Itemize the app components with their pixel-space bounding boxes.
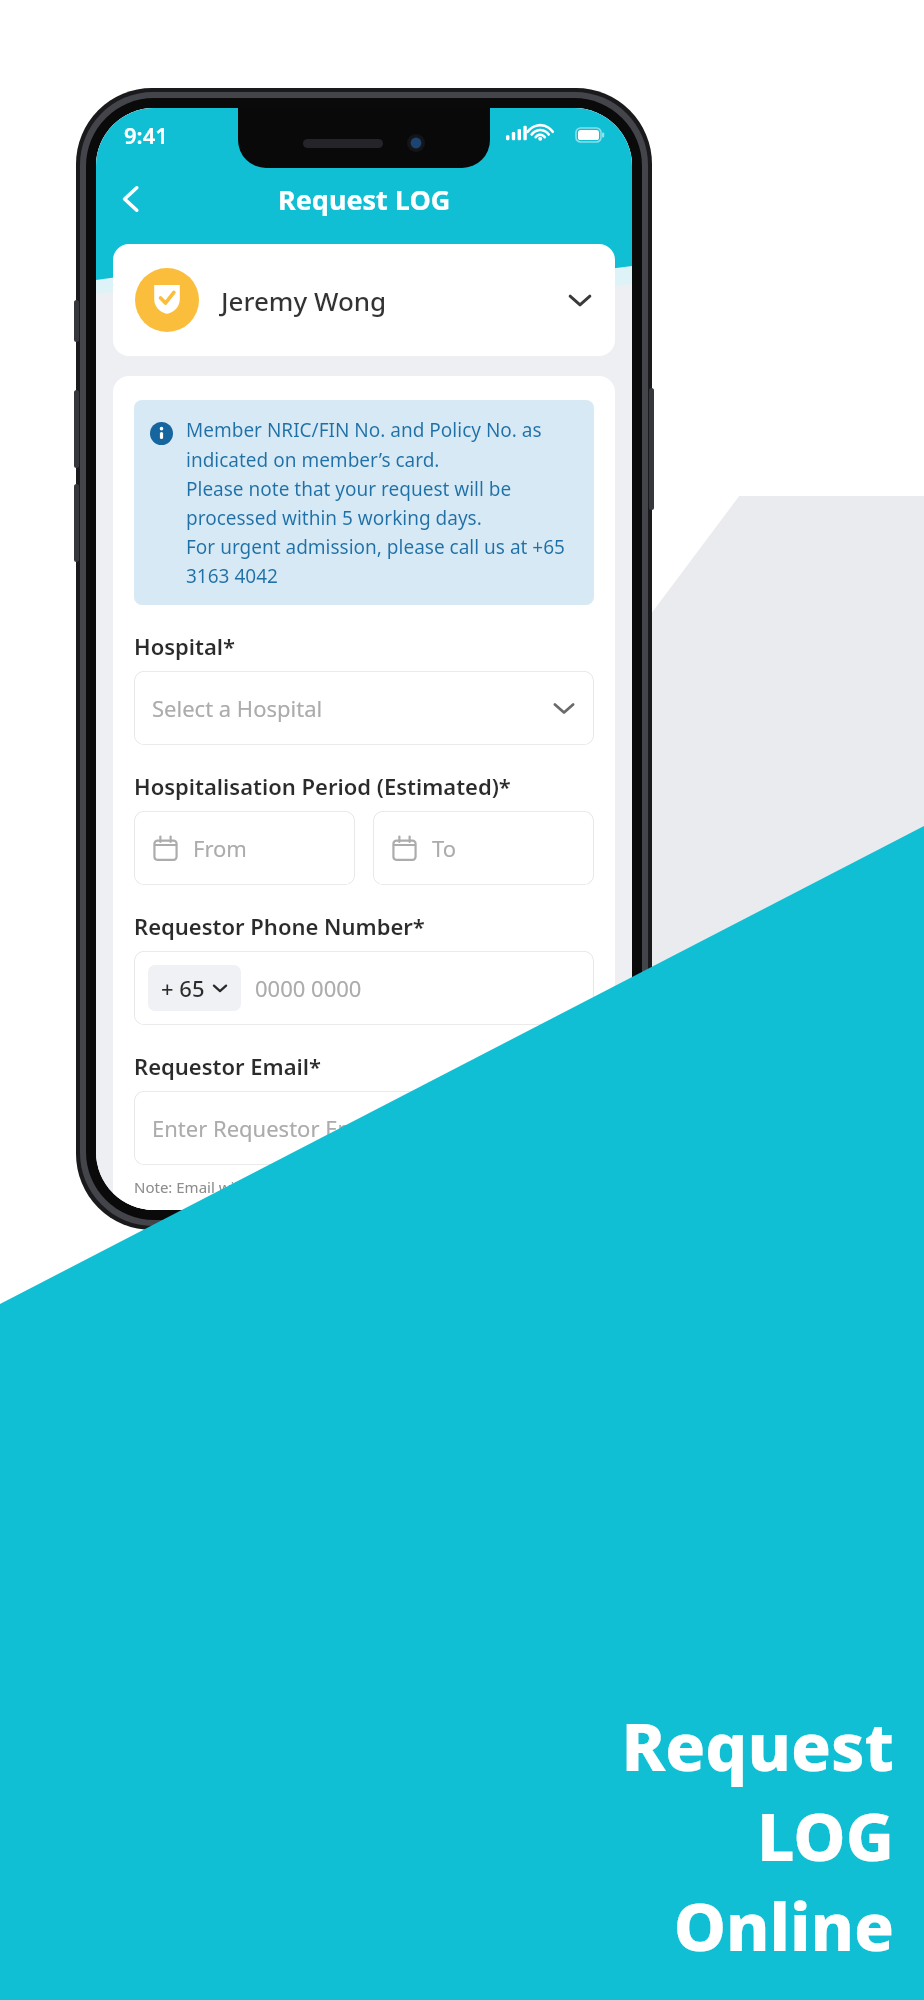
staticText: + 65 (161, 973, 205, 1003)
button[interactable]: Select a Hospital (134, 671, 594, 745)
button[interactable]: + 65 (148, 965, 241, 1011)
staticText: Member NRIC/FIN No. and Policy No. as in… (186, 417, 578, 588)
staticText: Hospitalisation Period (Estimated)* (134, 771, 511, 801)
staticText: LOG (757, 1790, 894, 1880)
staticText: Requestor Email* (134, 1051, 322, 1081)
button[interactable]: Back (102, 170, 160, 228)
staticText: Select a Hospital (152, 693, 323, 723)
button[interactable]: To (373, 811, 594, 885)
staticText: Enter Requestor Email (152, 1113, 382, 1143)
staticText: Request (621, 1700, 894, 1790)
staticText: Requestor Phone Number* (134, 911, 425, 941)
button[interactable]: Jeremy Wong (113, 244, 615, 356)
staticText: Jeremy Wong (221, 283, 387, 318)
button[interactable]: From (134, 811, 355, 885)
staticText: Online (673, 1880, 894, 1970)
button[interactable]: Enter Requestor Email (134, 1091, 594, 1165)
staticText: 0000 0000 (255, 973, 362, 1003)
staticText: Request LOG (278, 181, 451, 218)
staticText: From (193, 833, 247, 863)
staticText: To (432, 833, 457, 863)
staticText: Note: Email will be used for corresponde… (134, 1177, 445, 1197)
staticText: Hospital* (134, 631, 236, 661)
staticText: 9:41 (124, 120, 168, 150)
